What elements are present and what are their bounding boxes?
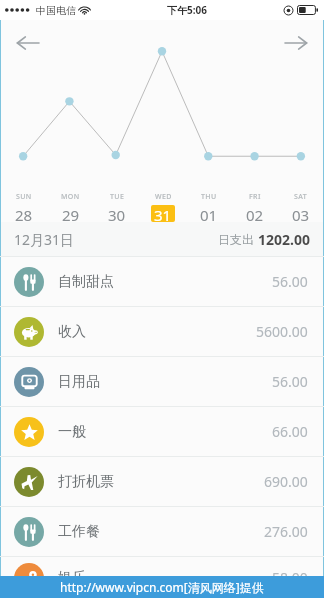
staticText: 一般 [58,423,86,441]
staticText: 02 [246,205,264,222]
button[interactable]: 收入 [0,307,324,356]
button[interactable]: Next week [278,25,314,61]
staticText: 56.00 [272,372,308,391]
staticText: 03 [292,205,310,222]
button[interactable]: 日用品 [0,357,324,406]
button[interactable]: FRI [232,192,278,222]
staticText: 下午5:06 [167,3,207,17]
staticText: http://www.vipcn.com[清风网络]提供 [60,579,264,595]
button[interactable]: Previous week [10,25,46,61]
staticText: SUN [16,192,32,202]
button[interactable]: 工作餐 [0,507,324,556]
staticText: 日支出 [218,232,254,247]
button[interactable]: TUE [94,192,140,222]
staticText: 56.00 [272,272,308,291]
button[interactable]: SAT [278,192,324,222]
button[interactable]: THU [186,192,232,222]
staticText: 娱乐 [58,569,86,587]
button[interactable]: MON [47,192,94,222]
button[interactable]: SUN [0,192,47,222]
staticText: 日用品 [58,373,100,391]
staticText: 收入 [58,323,86,341]
button[interactable]: WED [140,192,186,222]
staticText: 01 [200,205,218,222]
button[interactable]: 自制甜点 [0,257,324,306]
staticText: 5600.00 [256,322,308,341]
button[interactable]: 一般 [0,407,324,456]
staticText: 28 [15,205,33,222]
staticText: 31 [154,205,172,222]
staticText: 66.00 [272,422,308,441]
staticText: TUE [110,192,125,202]
staticText: 276.00 [264,522,308,541]
staticText: 1202.00 [258,230,310,249]
staticText: 12月31日 [14,230,75,249]
staticText: SAT [294,192,308,202]
staticText: THU [201,192,217,202]
button[interactable]: 娱乐 [0,557,324,598]
staticText: 自制甜点 [58,273,114,291]
staticText: 工作餐 [58,523,100,541]
staticText: WED [155,192,172,202]
staticText: MON [61,192,80,202]
staticText: 中国电信 [36,4,76,17]
staticText: 58.00 [272,568,308,587]
staticText: 30 [108,205,126,222]
button[interactable]: 打折机票 [0,457,324,506]
staticText: 690.00 [264,472,308,491]
staticText: 打折机票 [58,473,114,491]
staticText: FRI [249,192,261,202]
staticText: 29 [62,205,80,222]
